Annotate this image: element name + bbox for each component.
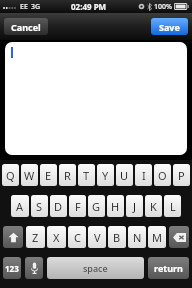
staticText: S xyxy=(36,199,43,214)
button[interactable]: V xyxy=(88,226,106,248)
staticText: P xyxy=(178,168,185,183)
button[interactable]: Shift xyxy=(3,226,23,248)
staticText: X xyxy=(53,230,60,245)
button[interactable]: O xyxy=(154,164,171,186)
button[interactable]: J xyxy=(126,195,143,217)
button[interactable]: H xyxy=(107,195,124,217)
staticText: return xyxy=(154,262,183,274)
button[interactable]: R xyxy=(59,164,76,186)
button[interactable]: U xyxy=(116,164,133,186)
staticText: V xyxy=(94,230,101,245)
button[interactable]: B xyxy=(108,226,126,248)
staticText: EE xyxy=(20,2,28,12)
staticText: 100% xyxy=(154,2,172,12)
button[interactable]: I xyxy=(135,164,152,186)
staticText: Q xyxy=(6,168,15,183)
staticText: H xyxy=(111,199,120,214)
staticText: J xyxy=(133,199,137,214)
button[interactable]: M xyxy=(148,226,166,248)
button[interactable]: X xyxy=(47,226,66,248)
button[interactable]: space xyxy=(47,257,144,279)
button[interactable]: Cancel xyxy=(4,18,48,35)
button[interactable]: Save xyxy=(151,18,188,35)
staticText: Save xyxy=(159,21,180,33)
button[interactable] xyxy=(5,42,187,155)
staticText: N xyxy=(133,230,142,245)
staticText: G xyxy=(92,199,101,214)
staticText: D xyxy=(54,199,63,214)
button[interactable]: F xyxy=(69,195,86,217)
staticText: T xyxy=(83,168,90,183)
staticText: W xyxy=(24,168,35,183)
staticText: U xyxy=(120,168,129,183)
staticText: L xyxy=(170,199,176,214)
button[interactable]: Y xyxy=(97,164,114,186)
staticText: 123 xyxy=(5,263,19,274)
button[interactable]: T xyxy=(78,164,95,186)
button[interactable]: C xyxy=(68,226,86,248)
staticText: space xyxy=(83,262,108,274)
staticText: F xyxy=(75,199,81,214)
staticText: Cancel xyxy=(11,21,41,33)
staticText: A xyxy=(16,199,24,214)
button[interactable]: N xyxy=(128,226,146,248)
button[interactable]: L xyxy=(164,195,181,217)
staticText: M xyxy=(152,230,162,245)
button[interactable]: Z xyxy=(26,226,45,248)
button[interactable]: E xyxy=(40,164,57,186)
staticText: K xyxy=(150,199,157,214)
button[interactable]: K xyxy=(145,195,162,217)
staticText: I xyxy=(142,168,146,183)
staticText: 02:49 PM xyxy=(71,1,107,12)
button[interactable]: return xyxy=(148,257,189,279)
staticText: O xyxy=(158,168,167,183)
button[interactable]: 123 xyxy=(3,257,21,279)
staticText: Y xyxy=(102,168,109,183)
button[interactable]: Backspace xyxy=(169,226,189,248)
staticText: C xyxy=(74,230,81,245)
button[interactable]: Q xyxy=(2,164,19,186)
button[interactable]: D xyxy=(50,195,67,217)
button[interactable]: W xyxy=(21,164,38,186)
button[interactable]: P xyxy=(173,164,190,186)
staticText: E xyxy=(45,168,52,183)
staticText: B xyxy=(113,230,121,245)
staticText: 3G xyxy=(31,2,41,12)
button[interactable]: A xyxy=(11,195,29,217)
button[interactable]: S xyxy=(31,195,48,217)
staticText: R xyxy=(64,168,71,183)
staticText: Z xyxy=(32,230,39,245)
button[interactable]: Dictation xyxy=(25,257,43,279)
button[interactable]: G xyxy=(88,195,105,217)
